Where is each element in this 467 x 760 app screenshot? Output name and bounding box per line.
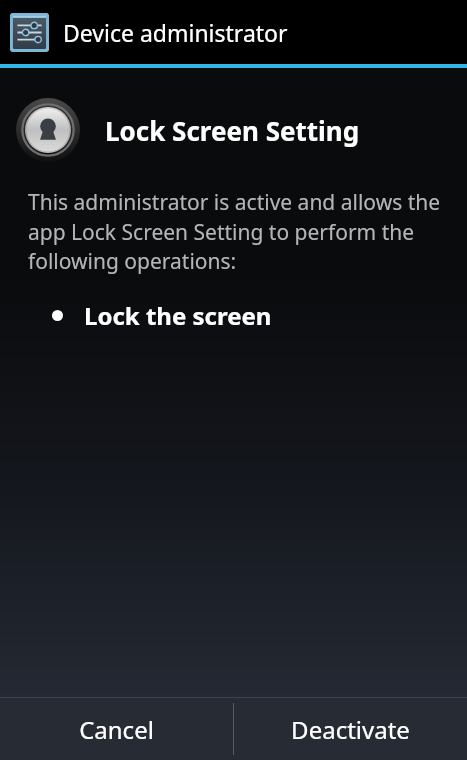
button[interactable]: Deactivate (234, 698, 467, 760)
staticText: Cancel (79, 713, 154, 746)
staticText: Deactivate (291, 713, 410, 746)
staticText: Device administrator (63, 17, 288, 48)
staticText: Lock Screen Setting (105, 113, 360, 148)
staticText: Lock the screen (84, 299, 272, 332)
button[interactable]: Cancel (0, 698, 233, 760)
staticText: This administrator is active and allows … (28, 188, 449, 275)
other: Settings (10, 13, 49, 52)
